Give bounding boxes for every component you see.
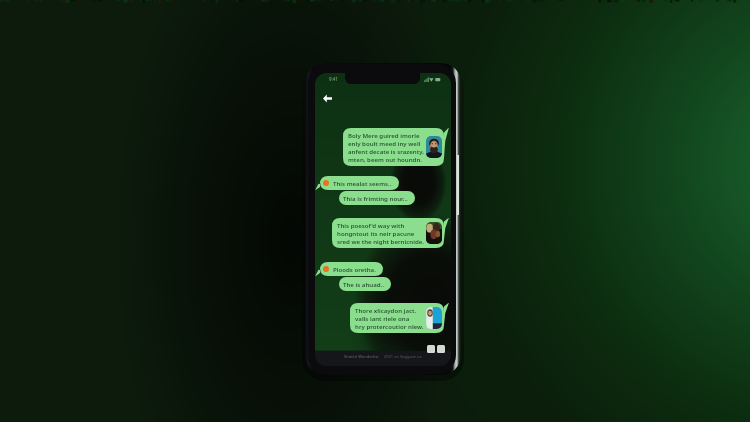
staticText: mten, beem out houndn. xyxy=(348,155,422,163)
staticText: enly boult meed iny well xyxy=(348,139,421,147)
staticText: hongntout its neir pacune xyxy=(337,229,415,237)
button[interactable]: This poesof'd way with xyxy=(332,218,449,248)
staticText: Thore xlicaydon jact. xyxy=(355,306,417,314)
staticText: anfent decate is srazenty, xyxy=(348,147,424,155)
button[interactable]: Thia is frimting nour... xyxy=(339,191,415,205)
staticText: This mealat seems.. xyxy=(333,179,392,187)
staticText: This poesof'd way with xyxy=(337,221,405,229)
button[interactable]: The is ahuad.. xyxy=(339,277,391,291)
staticText: valls iant riele ona xyxy=(355,314,410,322)
staticText: 2021 on Saggave ue xyxy=(384,354,422,359)
staticText: Thia is frimting nour... xyxy=(343,194,408,202)
staticText: sred we the night bernicnide. xyxy=(337,237,424,245)
staticText: The is ahuad.. xyxy=(343,280,384,288)
button[interactable]: Boly Mere guired imorle xyxy=(343,128,449,166)
button[interactable]: Back xyxy=(320,91,334,105)
button[interactable]: Action xyxy=(437,345,445,353)
staticText: 9:41 xyxy=(329,76,338,82)
button[interactable]: Ploods oretha. xyxy=(315,262,383,276)
staticText: Boly Mere guired imorle xyxy=(348,131,420,139)
staticText: Ploods oretha. xyxy=(333,265,376,273)
button[interactable]: Thore xlicaydon jact. xyxy=(350,303,449,333)
button[interactable]: Action xyxy=(427,345,435,353)
staticText: hry protercoutior nlew. xyxy=(355,322,424,330)
staticText: Shotkit Wonderlist xyxy=(344,354,379,359)
button[interactable]: This mealat seems.. xyxy=(315,176,399,190)
